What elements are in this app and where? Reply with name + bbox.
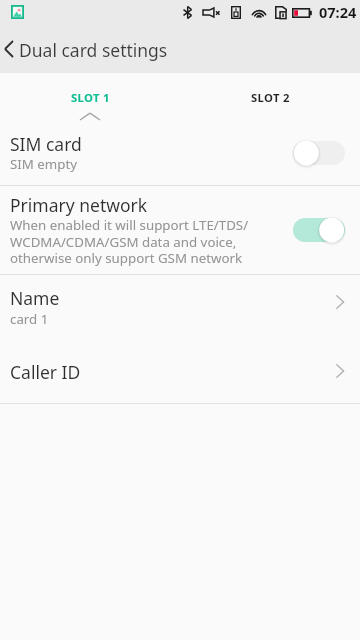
staticText: SIM card bbox=[10, 132, 82, 156]
button[interactable]: Name bbox=[0, 275, 360, 340]
button[interactable]: SIM card bbox=[0, 125, 360, 185]
button[interactable]: Switch off bbox=[293, 139, 345, 167]
button[interactable]: Switch on bbox=[293, 216, 345, 244]
staticText: card 1 bbox=[10, 310, 49, 328]
staticText: When enabled it will support LTE/TDS/ WC… bbox=[10, 216, 249, 267]
button[interactable]: Back bbox=[0, 24, 19, 72]
staticText: SLOT 2 bbox=[251, 90, 290, 105]
staticText: 07:24 bbox=[319, 2, 357, 22]
button[interactable]: SLOT 1 bbox=[0, 72, 180, 125]
staticText: Dual card settings bbox=[19, 38, 168, 62]
button[interactable]: Primary network bbox=[0, 186, 360, 274]
staticText: SLOT 1 bbox=[71, 90, 110, 105]
staticText: Name bbox=[10, 286, 60, 310]
button[interactable]: SLOT 2 bbox=[180, 72, 360, 125]
button[interactable]: Caller ID bbox=[0, 340, 360, 403]
staticText: Caller ID bbox=[10, 360, 81, 384]
staticText: SIM empty bbox=[10, 155, 78, 173]
staticText: Primary network bbox=[10, 193, 148, 217]
